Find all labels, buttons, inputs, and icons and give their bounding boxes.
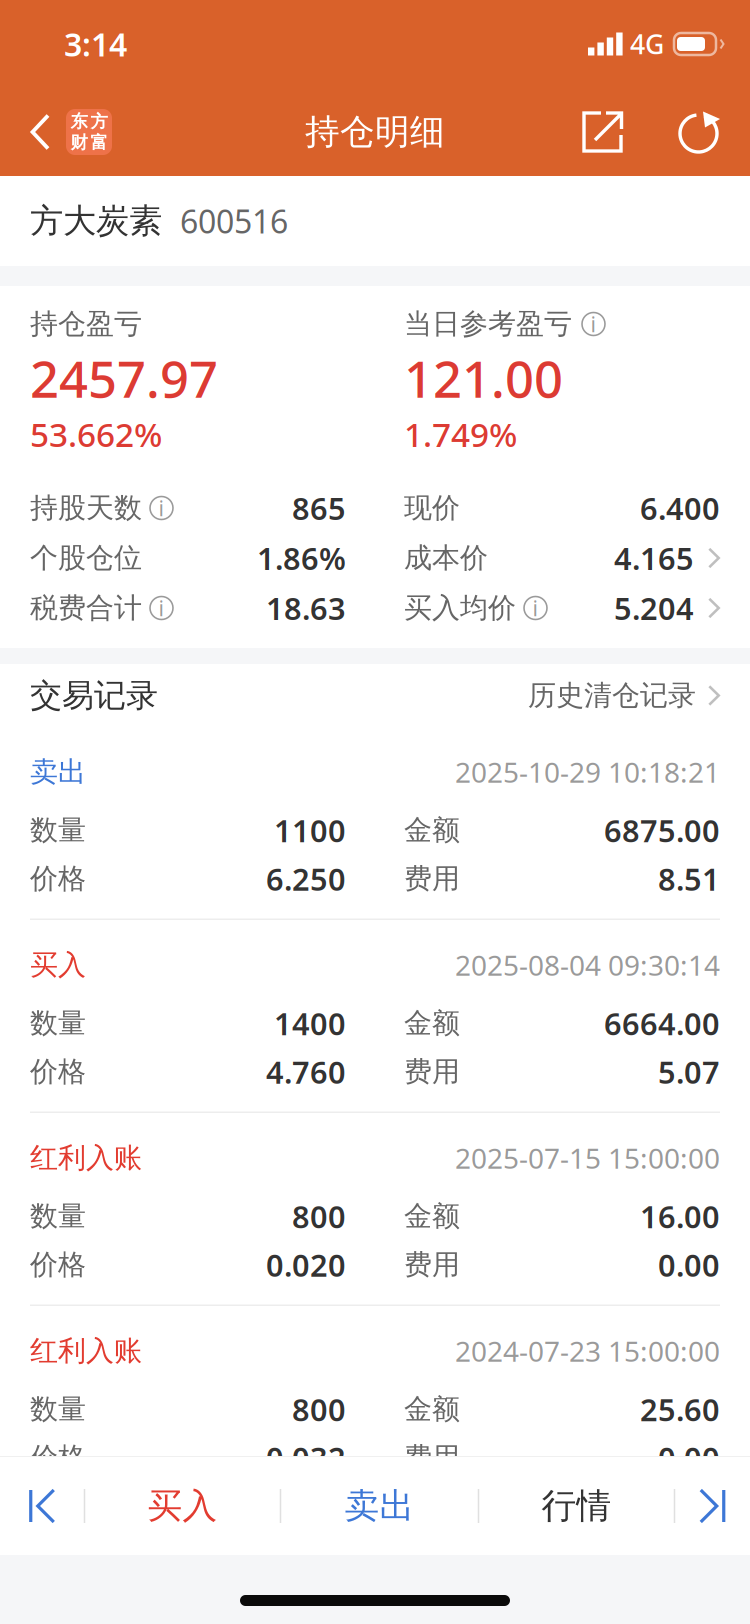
staticText: 800 xyxy=(292,1196,346,1237)
button[interactable]: 行情 xyxy=(479,1457,674,1555)
staticText: 600516 xyxy=(180,200,288,242)
staticText: 持仓盈亏 xyxy=(30,307,142,341)
staticText: 4G xyxy=(630,26,664,62)
staticText: 4.760 xyxy=(266,1051,346,1092)
staticText: 数量 xyxy=(30,813,86,847)
staticText: 2025-07-15 15:00:00 xyxy=(455,1139,720,1177)
staticText: 东 xyxy=(70,111,87,132)
button[interactable]: Refresh xyxy=(677,88,750,176)
staticText: 富 xyxy=(90,132,107,153)
staticText: 价格 xyxy=(30,1055,86,1089)
staticText: 金额 xyxy=(404,1006,460,1040)
staticText: 价格 xyxy=(30,862,86,896)
button[interactable]: Share xyxy=(568,88,677,176)
staticText: 800 xyxy=(292,1389,346,1430)
staticText: 持仓明细 xyxy=(305,111,445,153)
button[interactable]: 卖出 xyxy=(281,1457,478,1555)
staticText: 121.00 xyxy=(404,344,563,412)
staticText: 6.250 xyxy=(266,858,346,899)
staticText: 税费合计 xyxy=(30,591,142,625)
staticText: 行情 xyxy=(541,1485,611,1527)
staticText: 买入 xyxy=(147,1485,217,1527)
staticText: 费用 xyxy=(404,1055,460,1089)
staticText: 财 xyxy=(70,132,87,153)
staticText: 0.00 xyxy=(658,1437,720,1478)
staticText: i xyxy=(532,594,538,622)
staticText: 金额 xyxy=(404,813,460,847)
staticText: 6.400 xyxy=(640,488,720,528)
staticText: 买入 xyxy=(30,948,86,982)
staticText: 数量 xyxy=(30,1392,86,1426)
button[interactable]: 成本价 xyxy=(404,533,720,583)
staticText: 卖出 xyxy=(344,1485,414,1527)
staticText: 持股天数 xyxy=(30,491,142,525)
staticText: 0.020 xyxy=(266,1244,346,1285)
staticText: 红利入账 xyxy=(30,1141,142,1175)
staticText: i xyxy=(590,310,596,338)
staticText: 2024-07-23 15:00:00 xyxy=(455,1332,720,1370)
staticText: 卖出 xyxy=(30,755,86,789)
staticText: 2457.97 xyxy=(30,344,218,412)
staticText: 价格 xyxy=(30,1248,86,1282)
staticText: 费用 xyxy=(404,1441,460,1475)
staticText: 6875.00 xyxy=(604,810,720,851)
button[interactable]: 历史清仓记录 xyxy=(528,678,720,713)
staticText: 1.86% xyxy=(257,538,346,578)
button[interactable]: Back xyxy=(0,88,112,176)
staticText: 25.60 xyxy=(640,1389,720,1430)
staticText: i xyxy=(158,494,164,522)
staticText: 交易记录 xyxy=(30,676,158,715)
button[interactable]: 买入均价 xyxy=(404,583,720,633)
staticText: 8.51 xyxy=(658,858,720,899)
staticText: 金额 xyxy=(404,1199,460,1233)
staticText: 1.749% xyxy=(404,412,517,456)
staticText: 18.63 xyxy=(266,588,346,628)
staticText: 0.032 xyxy=(266,1437,346,1478)
button[interactable]: Last page xyxy=(675,1457,749,1555)
staticText: 4.165 xyxy=(614,538,694,578)
staticText: 红利入账 xyxy=(30,1334,142,1368)
staticText: 数量 xyxy=(30,1006,86,1040)
staticText: 方大炭素 xyxy=(30,200,162,241)
staticText: 费用 xyxy=(404,1248,460,1282)
staticText: 成本价 xyxy=(404,541,488,575)
staticText: 个股仓位 xyxy=(30,541,142,575)
button[interactable]: First page xyxy=(1,1457,84,1555)
staticText: 53.662% xyxy=(30,412,162,456)
staticText: 0.00 xyxy=(658,1244,720,1285)
staticText: 2025-10-29 10:18:21 xyxy=(455,753,720,791)
button[interactable]: 买入 xyxy=(85,1457,280,1555)
staticText: 1100 xyxy=(274,810,346,851)
staticText: 6664.00 xyxy=(604,1003,720,1044)
staticText: 1400 xyxy=(274,1003,346,1044)
staticText: 16.00 xyxy=(640,1196,720,1237)
staticText: 历史清仓记录 xyxy=(528,678,696,713)
staticText: 当日参考盈亏 xyxy=(404,307,572,341)
staticText: 金额 xyxy=(404,1392,460,1426)
staticText: 5.07 xyxy=(658,1051,720,1092)
staticText: 3:14 xyxy=(64,23,127,65)
staticText: 5.204 xyxy=(614,588,694,628)
staticText: 价格 xyxy=(30,1441,86,1475)
staticText: 买入均价 xyxy=(404,591,516,625)
staticText: 现价 xyxy=(404,491,460,525)
staticText: 费用 xyxy=(404,862,460,896)
staticText: i xyxy=(158,594,164,622)
staticText: 2025-08-04 09:30:14 xyxy=(455,946,720,984)
staticText: 865 xyxy=(292,488,346,528)
staticText: 方 xyxy=(90,111,107,132)
staticText: 数量 xyxy=(30,1199,86,1233)
